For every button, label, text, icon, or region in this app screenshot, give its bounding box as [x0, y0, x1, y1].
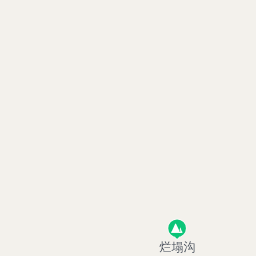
button[interactable]: 烂塌沟 景点标记 [155, 216, 200, 256]
staticText: 烂塌沟 [155, 239, 200, 255]
